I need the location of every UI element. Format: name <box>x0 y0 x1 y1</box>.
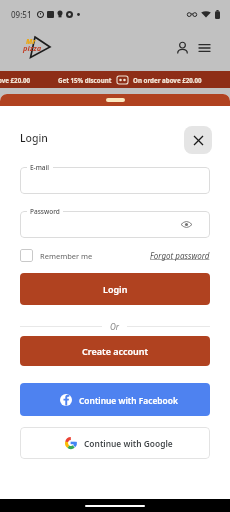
staticText: Remember me <box>40 251 93 261</box>
staticText: E-mail <box>30 163 50 172</box>
staticText: 09:51 <box>11 9 32 20</box>
staticText: Or <box>110 321 119 332</box>
staticText: Mr <box>26 37 36 47</box>
staticText: Create account <box>82 345 149 357</box>
staticText: Login <box>20 131 48 145</box>
button[interactable]: Remember me <box>20 249 93 262</box>
button[interactable]: Close <box>184 126 212 154</box>
button[interactable]: Create account <box>20 336 210 366</box>
staticText: Login <box>103 283 128 295</box>
button[interactable]: Continue with Google <box>20 427 210 459</box>
button[interactable] <box>20 167 210 194</box>
button[interactable]: Login <box>20 273 210 305</box>
button[interactable]: Continue with Facebook <box>20 383 210 416</box>
button[interactable]: Menu <box>195 37 213 59</box>
other: Show password <box>181 221 192 228</box>
staticText: On order above £20.00 <box>133 76 202 84</box>
button[interactable]: Forgot password <box>150 250 210 261</box>
button[interactable] <box>20 211 210 238</box>
staticText: Continue with Google <box>84 438 173 449</box>
button[interactable]: Mr Pizza home <box>12 33 50 63</box>
staticText: Password <box>30 207 60 216</box>
staticText: ove £20.00 <box>0 76 31 84</box>
staticText: Continue with Facebook <box>79 395 178 406</box>
staticText: pizza <box>23 43 42 53</box>
staticText: Get 15% discount <box>58 76 112 84</box>
button[interactable]: Account <box>173 37 191 59</box>
